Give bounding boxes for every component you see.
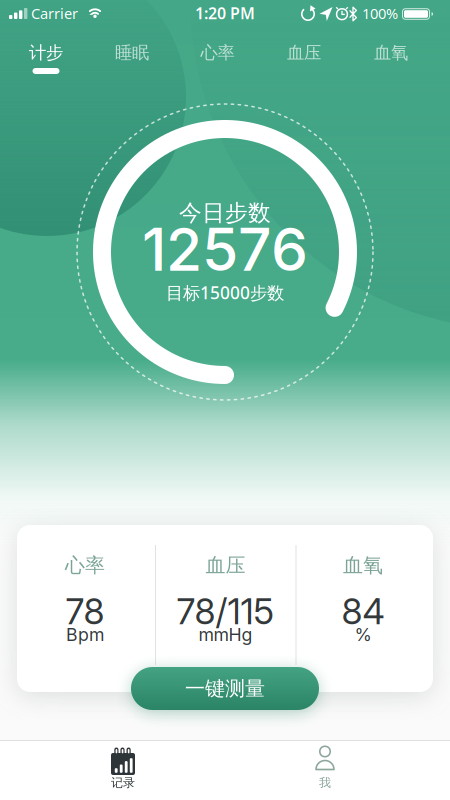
button[interactable]: 我 (265, 740, 385, 800)
button[interactable]: 血压 (259, 42, 349, 63)
staticText: 1:20 PM (195, 2, 255, 24)
staticText: Carrier (31, 3, 78, 23)
staticText: 一键测量 (185, 676, 265, 701)
staticText: 计步 (29, 42, 63, 63)
button[interactable]: 计步 (1, 42, 91, 63)
staticText: 12576 (142, 214, 308, 285)
button[interactable]: 记录 (63, 740, 183, 800)
staticText: 我 (319, 775, 331, 790)
staticText: 心率 (65, 553, 105, 578)
staticText: 记录 (111, 775, 135, 790)
button[interactable]: 心率 (172, 42, 262, 63)
button[interactable]: 睡眠 (87, 42, 177, 63)
staticText: mmHg (198, 624, 252, 645)
staticText: Bpm (66, 624, 104, 645)
staticText: 心率 (200, 42, 234, 63)
staticText: 血氧 (343, 553, 383, 578)
button[interactable]: 一键测量 (131, 667, 319, 710)
staticText: 78/115 (176, 590, 274, 633)
staticText: 目标15000步数 (166, 281, 284, 304)
button[interactable]: 血氧 (346, 42, 436, 63)
staticText: 血压 (287, 42, 321, 63)
staticText: 血氧 (374, 42, 408, 63)
staticText: % (354, 624, 371, 645)
staticText: 血压 (205, 553, 245, 578)
staticText: 睡眠 (115, 42, 149, 63)
staticText: 100% (362, 3, 398, 23)
staticText: 今日步数 (179, 199, 271, 227)
staticText: 78 (65, 590, 104, 633)
staticText: 84 (341, 590, 384, 633)
